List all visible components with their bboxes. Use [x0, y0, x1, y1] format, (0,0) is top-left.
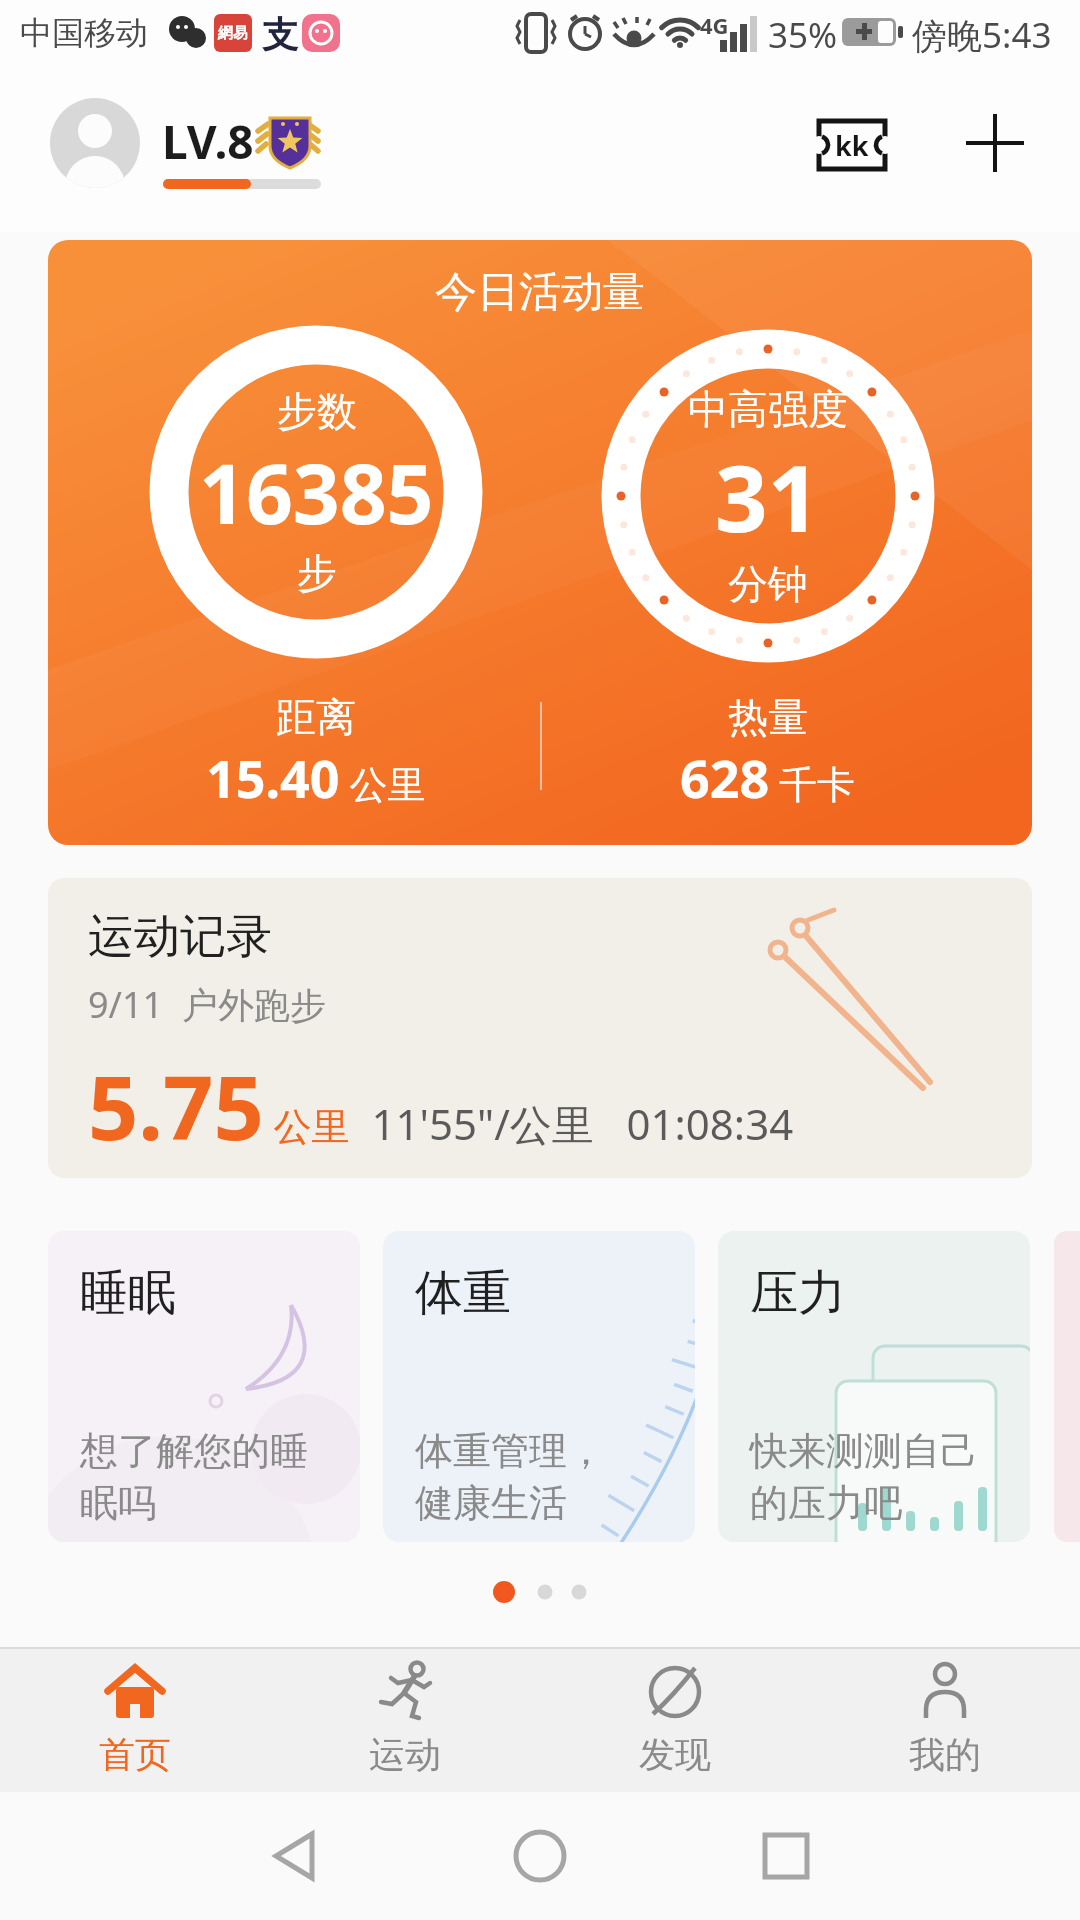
staticText: 628 千卡 — [680, 742, 856, 813]
staticText: LV.8 — [162, 110, 254, 173]
staticText: 我的 — [909, 1732, 981, 1777]
staticText: 运动记录 — [88, 908, 272, 966]
staticText: 运动 — [369, 1732, 441, 1777]
button[interactable]: 体重 — [383, 1231, 695, 1542]
staticText: 分钟 — [728, 559, 808, 609]
button[interactable] — [270, 1832, 320, 1882]
staticText: 步数 — [277, 386, 357, 436]
staticText: 压力 — [750, 1263, 846, 1323]
staticText: 想了解您的睡 眠吗 — [80, 1427, 308, 1527]
staticText: 支 — [262, 12, 298, 57]
button[interactable]: 运动记录 — [48, 878, 1032, 1178]
staticText: 快来测测自己 的压力吧 — [750, 1427, 978, 1527]
button[interactable]: 发现 — [540, 1647, 810, 1792]
button[interactable] — [513, 1829, 567, 1883]
staticText: 体重 — [415, 1263, 511, 1323]
staticText: 4G — [700, 10, 729, 40]
staticText: 体重管理， 健康生活 — [415, 1427, 605, 1527]
staticText: 睡眠 — [80, 1263, 176, 1323]
staticText: 9/11 户外跑步 — [88, 980, 326, 1029]
staticText: 今日活动量 — [435, 266, 645, 319]
button[interactable]: 我的 — [810, 1647, 1080, 1792]
staticText: 網易 — [218, 24, 248, 43]
staticText: 16385 — [199, 436, 434, 548]
staticText: 步 — [297, 548, 337, 598]
button[interactable]: 运动 — [270, 1647, 540, 1792]
button[interactable]: 首页 — [0, 1647, 270, 1792]
button[interactable] — [966, 114, 1024, 172]
button[interactable]: 今日活动量 — [48, 240, 1032, 845]
button[interactable]: 压力 — [718, 1231, 1030, 1542]
staticText: 31 — [715, 434, 821, 559]
staticText: 热量 — [728, 692, 808, 742]
staticText: 发现 — [639, 1732, 711, 1777]
staticText: 15.40 公里 — [206, 742, 426, 813]
staticText: 首页 — [99, 1732, 171, 1777]
staticText: 傍晚5:43 — [912, 11, 1052, 59]
staticText: 35% — [768, 11, 838, 59]
staticText: 距离 — [276, 692, 356, 742]
staticText: kk — [835, 127, 869, 164]
button[interactable]: 睡眠 — [48, 1231, 360, 1542]
staticText: 5.75 公里 11'55"/公里 01:08:34 — [88, 1046, 794, 1166]
button[interactable]: kk — [817, 119, 887, 171]
button[interactable] — [50, 98, 140, 188]
button[interactable] — [762, 1832, 812, 1882]
staticText: 中高强度 — [688, 384, 848, 434]
staticText: 中国移动 — [20, 13, 148, 53]
